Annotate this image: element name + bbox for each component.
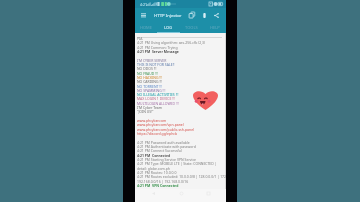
staticText: I'M Cyber Team	[137, 105, 226, 110]
button[interactable]: Open navigation drawer	[138, 8, 148, 22]
staticText: PIA	[137, 36, 226, 41]
staticText: NO ILLEGAL ACTIVITIES !!!	[137, 92, 226, 97]
staticText: 4:21 PM Using algorithm: aes-256-cfb (2,…	[137, 40, 226, 45]
staticText: HOME	[140, 25, 152, 30]
staticText: www.phcyber.com/public-ssh-panel	[137, 127, 226, 132]
staticText: 4:21 PM VPN Connected	[137, 183, 226, 188]
staticText: NO TORRENT !!!	[137, 84, 226, 89]
staticText: 4:21 PM Starting Service VPN Service	[137, 157, 226, 162]
button[interactable]: Share	[211, 8, 221, 22]
staticText: THIS IS NOT FOR SALE!!	[137, 62, 226, 67]
button[interactable]: Copy log	[187, 8, 197, 22]
staticText: MAX LOGIN 1 DEVICE !!!	[137, 96, 226, 101]
staticText: TOOLS	[185, 25, 198, 30]
staticText: detail: globe.com.ph	[137, 166, 226, 171]
staticText: 4:21 PM Type: MOBILE LTE | State: CONNEC…	[137, 161, 226, 166]
staticText: 4:21 PM Connected	[137, 153, 226, 158]
staticText: MULTILOGIN ALLOWED !!!	[137, 101, 226, 106]
button[interactable]: TOOLS	[180, 22, 203, 33]
button[interactable]: HOME	[135, 22, 157, 33]
staticText: 4:21 PM Routes: 10.0.0.0	[137, 170, 226, 175]
staticText: 4:21 PM Routes excluded: 10.0.0.0/8 | 12…	[137, 174, 226, 179]
staticText: 4:21	[140, 2, 148, 7]
staticText: LOG	[164, 25, 173, 30]
staticText: "JOIN US!"	[137, 109, 226, 114]
staticText: HTTP Injector	[154, 12, 182, 18]
staticText: NO FRAUD !!!	[137, 71, 226, 76]
staticText: 4:21 PM Authenticate with password	[137, 144, 226, 149]
staticText: https://discord.gg/ephcb	[137, 131, 226, 136]
staticText: www.phcyber.com/vpn-panel	[137, 122, 226, 127]
button[interactable]: Delete log	[199, 8, 209, 22]
button[interactable]: HELP	[203, 22, 226, 33]
staticText: www.phcyber.com	[137, 118, 226, 123]
staticText: 4:21 PM Server Message	[137, 49, 226, 54]
button[interactable]: LOG	[157, 22, 180, 33]
staticText: HELP	[210, 25, 220, 30]
staticText: 4:21 PM Common: Trying	[137, 45, 226, 50]
staticText: NO SPAMMING !!!	[137, 88, 226, 93]
staticText: NO CARDING !!!	[137, 79, 226, 84]
staticText: 4:21 PM Connect Successful	[137, 148, 226, 153]
staticText: 4:21 PM Password auth available	[137, 140, 226, 145]
staticText: 192.168.0.0/16 | 192.168.0.0/16	[137, 179, 226, 184]
staticText: NO DDOS !!!	[137, 66, 226, 71]
staticText: I'M CYBER SERVER	[137, 58, 226, 63]
staticText: NO HACKING !!!	[137, 75, 226, 80]
